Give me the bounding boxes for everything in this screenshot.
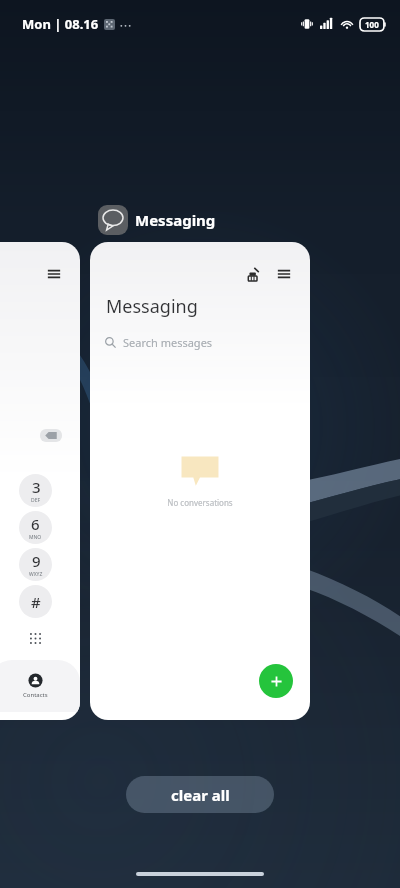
staticText: 9 xyxy=(32,551,41,571)
staticText: DEF xyxy=(31,497,41,504)
staticText: Mon | 08.16 xyxy=(22,15,99,33)
staticText: Contacts xyxy=(23,691,48,699)
button[interactable]: 3 xyxy=(19,474,52,507)
staticText: Messaging xyxy=(106,294,198,319)
button[interactable]: 6 xyxy=(19,511,52,544)
staticText: MNO xyxy=(29,534,42,541)
button[interactable]: New conversation xyxy=(259,664,293,698)
staticText: Messaging xyxy=(135,210,216,230)
button[interactable]: Keypad xyxy=(22,625,48,651)
button[interactable]: Menu xyxy=(272,262,296,286)
button[interactable]: Backspace xyxy=(40,429,62,442)
button[interactable]: Menu xyxy=(42,262,66,286)
button[interactable]: # xyxy=(19,585,52,618)
staticText: 100 xyxy=(365,19,379,30)
staticText: No conversations xyxy=(167,497,233,508)
button[interactable]: clear all xyxy=(126,776,274,813)
button[interactable]: Contacts xyxy=(0,660,80,712)
staticText: WXYZ xyxy=(29,571,43,578)
staticText: # xyxy=(31,592,41,612)
staticText: clear all xyxy=(171,785,230,805)
button[interactable]: Menu xyxy=(0,242,80,720)
button[interactable]: Messaging xyxy=(96,203,218,237)
button[interactable]: 9 xyxy=(19,548,52,581)
staticText: Search messages xyxy=(123,335,213,350)
button[interactable]: Clean up xyxy=(90,242,310,720)
button[interactable]: Clean up xyxy=(240,262,264,286)
button[interactable]: Search messages xyxy=(105,330,295,354)
staticText: 6 xyxy=(31,514,40,534)
staticText: 3 xyxy=(32,477,41,497)
